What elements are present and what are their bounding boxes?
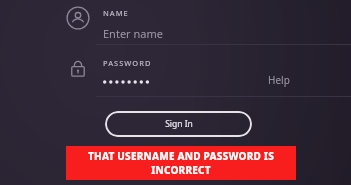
staticText: PASSWORD [103,58,152,68]
button[interactable]: THAT USERNAME AND PASSWORD IS INCORRECT [66,146,296,180]
staticText: Help [268,73,290,87]
button[interactable]: Password [66,56,90,80]
staticText: THAT USERNAME AND PASSWORD IS INCORRECT [66,149,296,177]
button[interactable]: Sign In [105,111,252,137]
staticText: NAME [103,8,129,18]
staticText: Enter name [103,26,163,41]
button[interactable]: Help [262,71,296,89]
button[interactable]: Account [66,6,90,30]
button[interactable]: Enter name [96,22,351,44]
button[interactable] [96,72,256,92]
staticText: Sign In [165,118,193,130]
